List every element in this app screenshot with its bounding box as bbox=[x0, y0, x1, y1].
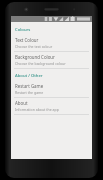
button[interactable]: Text Colour bbox=[11, 35, 92, 51]
staticText: Background Colour bbox=[15, 54, 55, 60]
staticText: About / Other bbox=[15, 73, 43, 79]
staticText: Restart Game bbox=[15, 83, 44, 89]
staticText: Restart the game bbox=[15, 90, 44, 95]
button[interactable]: About bbox=[11, 98, 92, 114]
staticText: Text Colour bbox=[15, 37, 39, 43]
staticText: Choose the text colour bbox=[15, 44, 53, 49]
staticText: Colours bbox=[15, 27, 31, 33]
button[interactable]: Background Colour bbox=[11, 52, 92, 68]
staticText: About bbox=[15, 100, 28, 106]
staticText: Information about the app bbox=[15, 107, 59, 112]
button[interactable]: Restart Game bbox=[11, 81, 92, 97]
staticText: Choose the background colour bbox=[15, 61, 66, 66]
